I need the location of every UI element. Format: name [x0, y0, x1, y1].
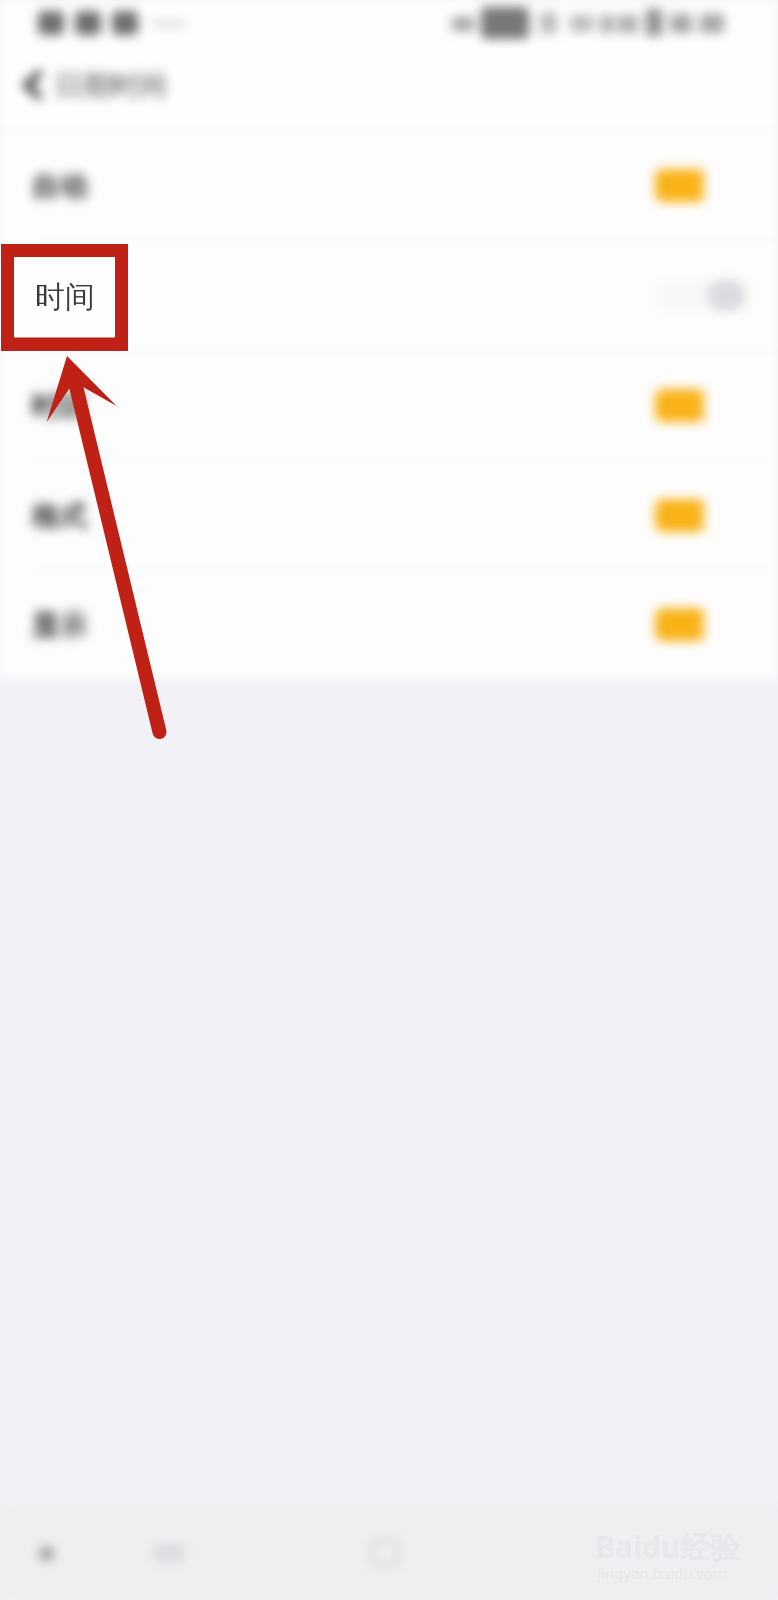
staticText: 时间	[35, 278, 95, 316]
button[interactable]: Back	[8, 61, 56, 109]
staticText: 自动	[31, 169, 87, 204]
button[interactable]: Toggle	[651, 499, 755, 532]
staticText: 显示	[31, 608, 87, 643]
button[interactable]: Toggle	[651, 389, 755, 422]
staticText: 格式	[31, 499, 87, 534]
button[interactable]: 时区	[0, 351, 778, 461]
button[interactable]: Toggle	[651, 608, 755, 641]
button[interactable]: Toggle	[651, 169, 755, 202]
button[interactable]: 自动	[0, 131, 778, 241]
button[interactable]: Back	[6, 1523, 86, 1583]
button[interactable]: Toggle	[651, 279, 755, 312]
staticText: jingyan.baidu.com	[597, 1563, 727, 1583]
staticText: 时区	[31, 389, 87, 424]
staticText: 时间	[31, 279, 87, 314]
button[interactable]: 显示	[0, 571, 778, 679]
staticText: Baidu经验	[595, 1526, 741, 1567]
button[interactable]: Home	[129, 1523, 209, 1583]
button[interactable]: 时间	[0, 241, 778, 351]
staticText: 日期时间	[55, 68, 167, 103]
button[interactable]: 格式	[0, 461, 778, 571]
